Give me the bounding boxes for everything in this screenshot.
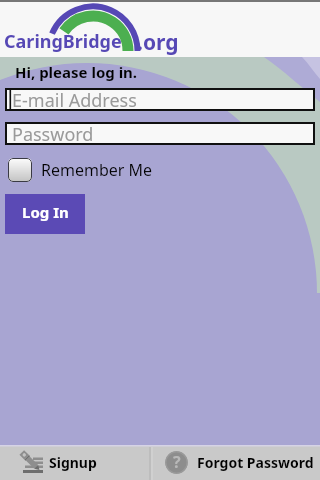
staticText: .org: [137, 28, 179, 57]
button[interactable]: Forgot Password: [150, 445, 320, 480]
other: Forgot Password: [165, 451, 188, 474]
button[interactable]: E-mail Address: [5, 88, 315, 111]
staticText: E-mail Address: [12, 88, 137, 111]
staticText: Signup: [49, 453, 97, 472]
staticText: CaringBridge: [4, 29, 122, 54]
other: Signup: [20, 452, 43, 474]
button[interactable]: Log In: [5, 194, 85, 234]
button[interactable]: Password: [5, 122, 315, 145]
staticText: Forgot Password: [197, 453, 314, 472]
button[interactable]: Remember Me: [8, 158, 153, 182]
staticText: ?: [173, 451, 181, 473]
staticText: Log In: [22, 202, 69, 222]
staticText: Hi, please log in.: [15, 62, 138, 82]
staticText: Remember Me: [41, 159, 153, 181]
staticText: Password: [12, 122, 94, 145]
button[interactable]: Signup: [0, 445, 150, 480]
